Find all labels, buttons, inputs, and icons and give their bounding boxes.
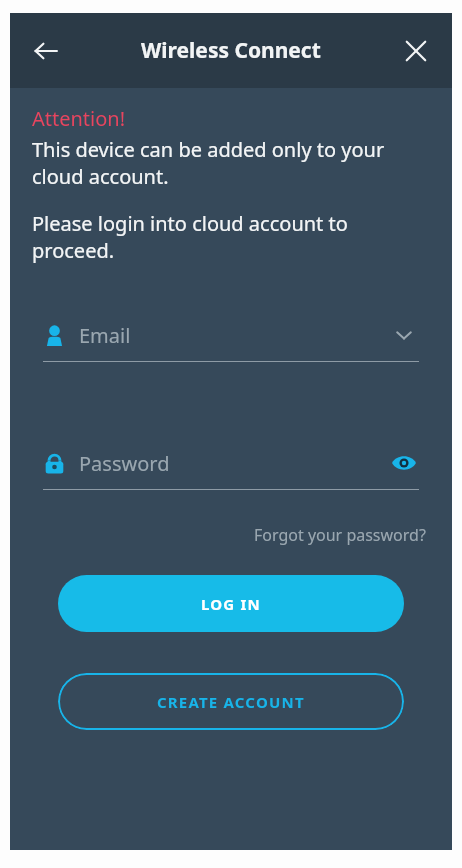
button[interactable]: Forgot your password? bbox=[250, 520, 430, 550]
staticText: Attention! bbox=[32, 105, 126, 132]
button[interactable]: Show password bbox=[389, 448, 419, 478]
staticText: CREATE ACCOUNT bbox=[157, 692, 305, 712]
button[interactable]: Back bbox=[22, 27, 70, 75]
staticText: Please login into cloud account to proce… bbox=[32, 210, 430, 264]
button[interactable]: CREATE ACCOUNT bbox=[58, 673, 404, 730]
button[interactable]: Email bbox=[43, 318, 419, 362]
staticText: LOG IN bbox=[201, 594, 261, 614]
staticText: Email bbox=[79, 322, 389, 349]
button[interactable]: Password bbox=[43, 446, 419, 490]
button[interactable]: LOG IN bbox=[58, 575, 404, 632]
staticText: Wireless Connect bbox=[141, 36, 321, 65]
button[interactable]: Close bbox=[394, 29, 438, 73]
staticText: Password bbox=[79, 450, 389, 477]
button[interactable]: Show saved emails bbox=[389, 320, 419, 350]
staticText: This device can be added only to your cl… bbox=[32, 136, 430, 190]
staticText: Forgot your password? bbox=[254, 524, 426, 546]
